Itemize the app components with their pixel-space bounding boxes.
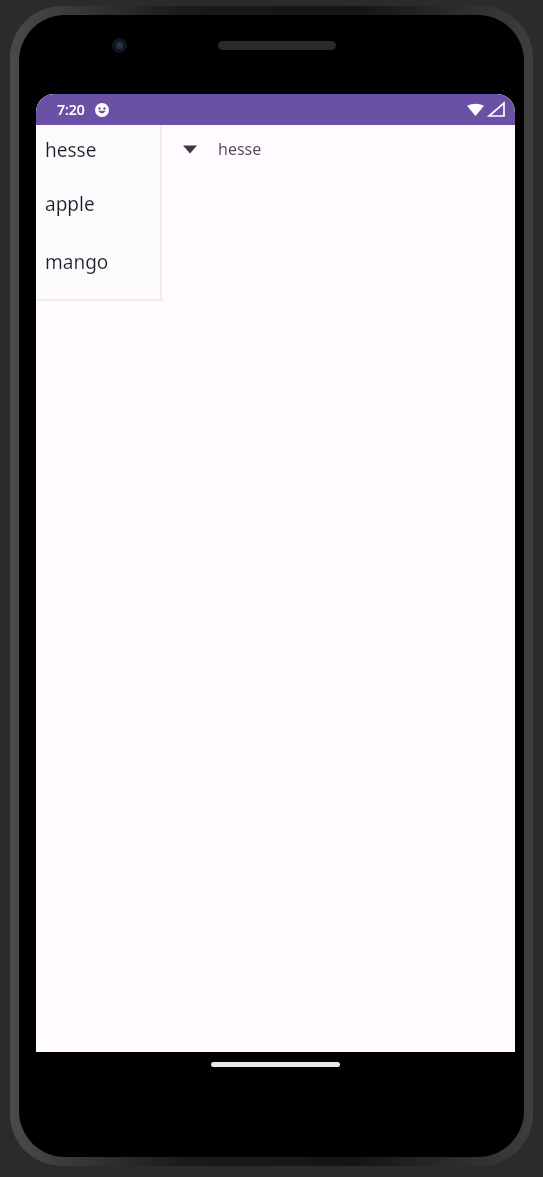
staticText: hesse xyxy=(218,138,262,160)
staticText: hesse xyxy=(45,137,97,163)
button[interactable]: Open dropdown xyxy=(172,125,515,173)
other: Open dropdown xyxy=(183,144,197,154)
staticText: mango xyxy=(45,249,109,275)
staticText: apple xyxy=(45,191,95,217)
button[interactable]: apple xyxy=(36,175,160,233)
staticText: 7:20 xyxy=(57,100,85,119)
button[interactable]: mango xyxy=(36,233,160,291)
button[interactable]: hesse xyxy=(36,125,160,175)
